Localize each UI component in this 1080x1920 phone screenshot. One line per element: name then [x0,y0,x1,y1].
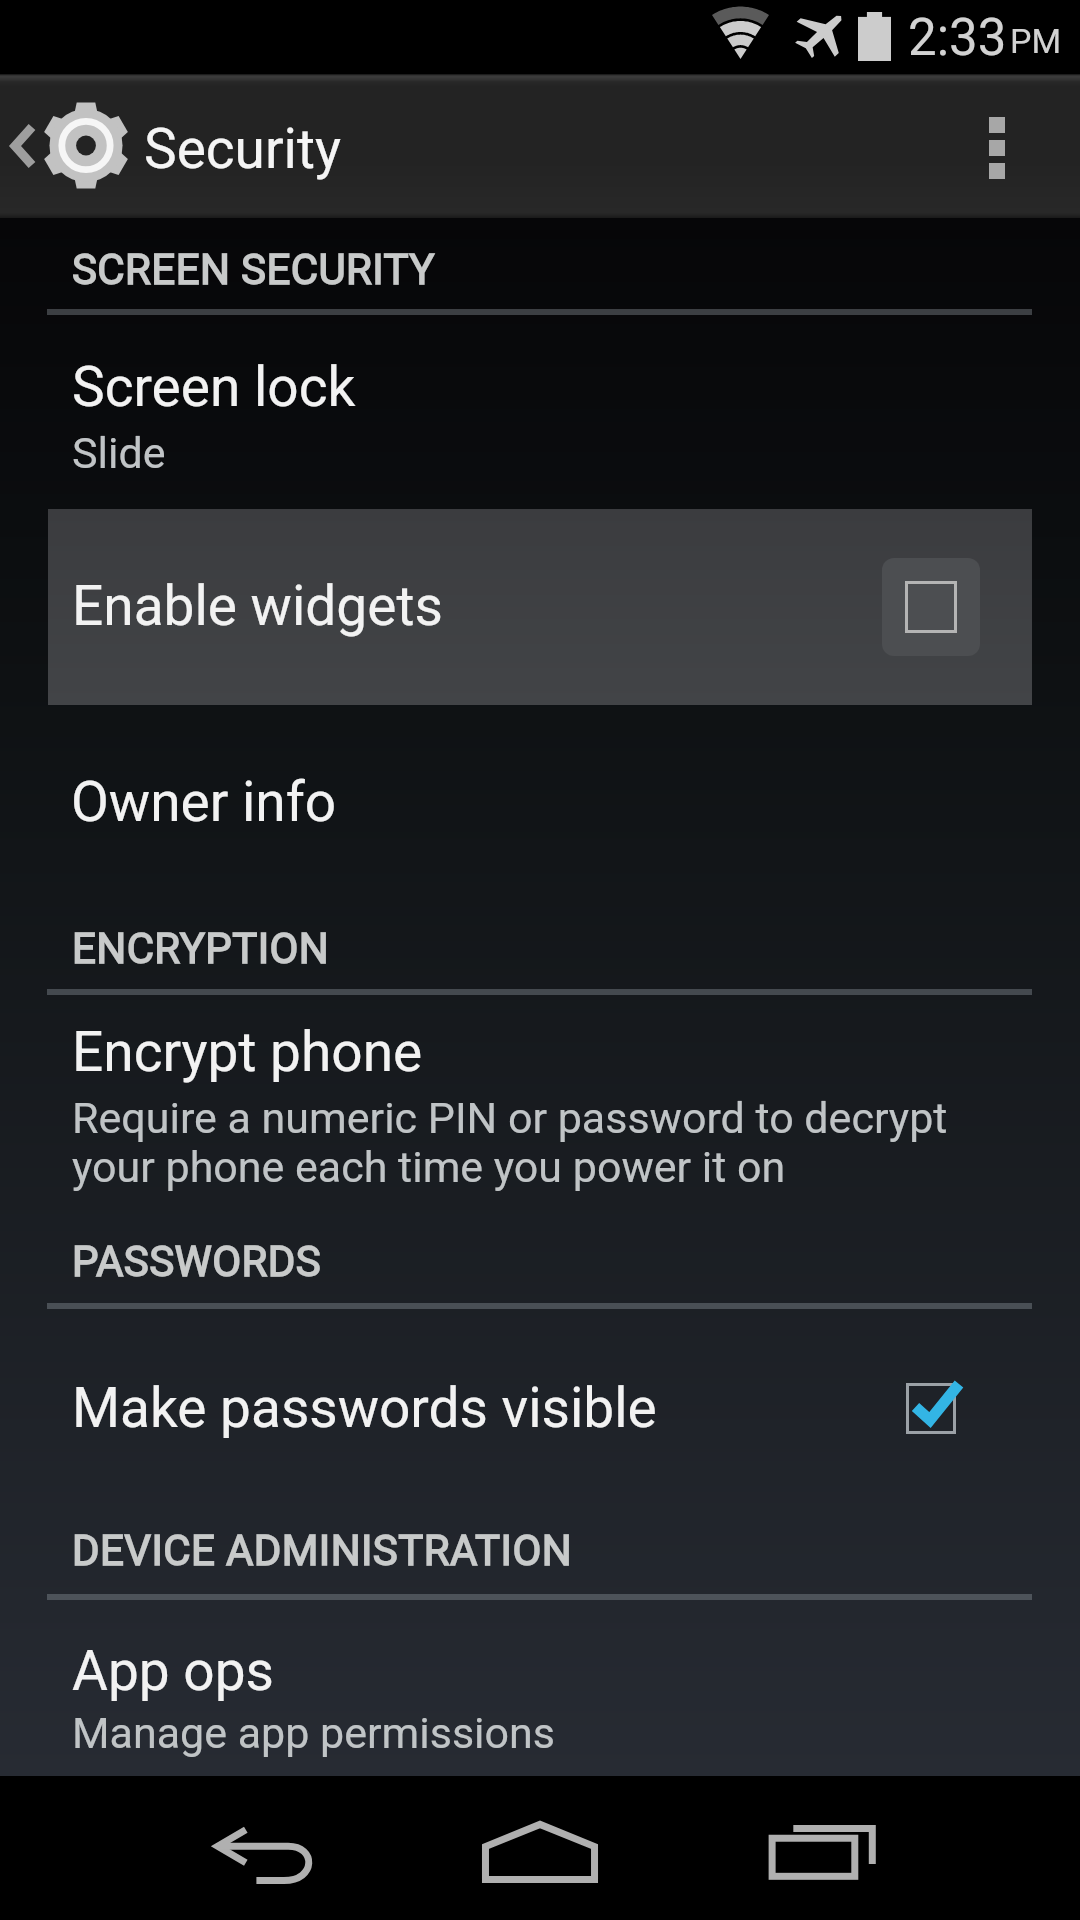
button[interactable]: Home [410,1776,670,1920]
staticText: PM [1010,21,1062,61]
button[interactable]: Back [130,1776,392,1920]
button[interactable]: Navigate up [0,74,350,218]
button[interactable]: More options [924,74,1069,218]
button[interactable]: Enable widgets [48,509,1032,705]
staticText: Owner info [71,770,337,834]
button[interactable]: App ops [0,1616,1080,1766]
staticText: Manage app permissions [72,1708,556,1758]
staticText: Make passwords visible [72,1376,657,1440]
staticText: SCREEN SECURITY [72,245,435,294]
staticText: Slide [72,428,166,478]
staticText: Encrypt phone [72,1020,423,1084]
button[interactable]: Owner info [0,720,1080,880]
button[interactable]: Recent apps [690,1776,950,1920]
staticText: Screen lock [72,355,356,419]
staticText: Security [144,117,341,181]
button[interactable]: Screen lock [0,330,1080,490]
button[interactable]: Make passwords visible [0,1325,1080,1485]
staticText: Enable widgets [72,574,443,638]
staticText: ENCRYPTION [72,924,330,973]
staticText: Require a numeric PIN or password to dec… [72,1093,948,1192]
staticText: 2:33 [908,8,1007,68]
staticText: App ops [72,1639,274,1703]
button[interactable]: Encrypt phone [0,1005,1080,1205]
staticText: PASSWORDS [72,1237,322,1286]
staticText: DEVICE ADMINISTRATION [72,1526,573,1575]
